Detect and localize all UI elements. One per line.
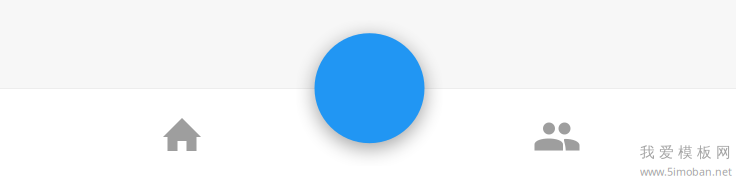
staticText: 我 爱 模 板 网 — [640, 143, 731, 161]
button[interactable]: Home — [2, 89, 292, 180]
button[interactable]: Add — [314, 33, 424, 143]
button[interactable]: Friends — [445, 91, 735, 180]
staticText: www.5imoban.net — [640, 164, 732, 179]
